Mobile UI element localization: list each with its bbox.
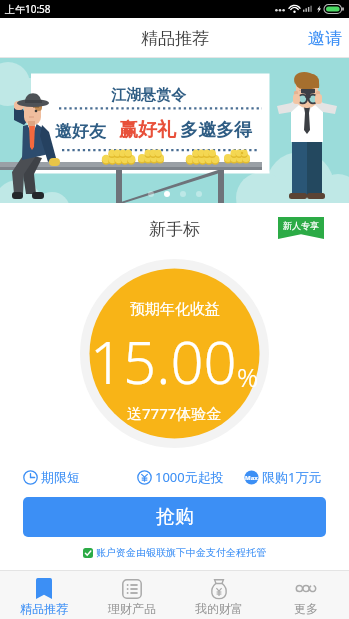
staticText: 精品推荐	[141, 28, 209, 49]
staticText: 新人专享	[283, 220, 319, 231]
staticText: 送7777体验金	[127, 403, 222, 423]
staticText: 多邀多得	[180, 119, 252, 142]
button[interactable]: 邀请	[295, 18, 349, 58]
staticText: 15.00	[90, 322, 237, 401]
staticText: 1000元起投	[155, 468, 224, 486]
button[interactable]: 期限短	[23, 469, 80, 485]
button[interactable]: 我的财富	[175, 570, 262, 619]
staticText: 更多	[294, 601, 318, 616]
staticText: 新手标	[149, 219, 200, 240]
staticText: 江湖悬赏令	[111, 86, 186, 105]
staticText: 期限短	[41, 469, 80, 485]
button[interactable]: Max	[244, 468, 322, 486]
staticText: 精品推荐	[20, 601, 68, 616]
staticText: 邀请	[308, 28, 342, 49]
staticText: 限购1万元	[262, 468, 322, 486]
staticText: 预期年化收益	[130, 300, 220, 319]
staticText: 理财产品	[108, 601, 156, 616]
staticText: Max	[245, 474, 258, 482]
button[interactable]: 更多	[262, 570, 349, 619]
staticText: 邀好友	[55, 121, 106, 142]
staticText: 赢好礼	[119, 118, 176, 142]
staticText: 抢购	[156, 505, 194, 529]
staticText: 账户资金由银联旗下中金支付全程托管	[96, 546, 266, 559]
button[interactable]: 理财产品	[88, 570, 175, 619]
staticText: %	[237, 359, 259, 394]
button[interactable]: 1000元起投	[137, 468, 224, 486]
button[interactable]: Promotion banner	[0, 58, 349, 203]
button[interactable]: 精品推荐	[0, 570, 88, 619]
staticText: 上午10:58	[5, 2, 51, 16]
button[interactable]: 抢购	[23, 497, 326, 537]
staticText: 我的财富	[195, 601, 243, 616]
